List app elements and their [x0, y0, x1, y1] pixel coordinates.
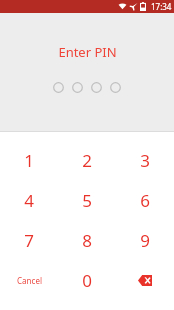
staticText: 1	[24, 149, 34, 172]
staticText: 8	[82, 229, 92, 252]
button[interactable]: 9	[116, 220, 174, 260]
button[interactable]: 0	[58, 260, 116, 300]
staticText: 9	[140, 229, 150, 252]
staticText: Enter PIN	[58, 43, 117, 61]
staticText: Cancel	[17, 275, 42, 286]
button[interactable]: 4	[0, 180, 58, 220]
button[interactable]: Cancel	[0, 260, 58, 300]
staticText: 3	[140, 149, 150, 172]
staticText: 17:34	[151, 1, 172, 12]
button[interactable]: 7	[0, 220, 58, 260]
button[interactable]: 8	[58, 220, 116, 260]
staticText: 7	[24, 229, 34, 252]
button[interactable]: 6	[116, 180, 174, 220]
button[interactable]: 3	[116, 140, 174, 180]
staticText: 6	[140, 189, 150, 212]
staticText: 0	[82, 269, 92, 292]
button[interactable]: 2	[58, 140, 116, 180]
staticText: 4	[24, 189, 34, 212]
button[interactable]: 1	[0, 140, 58, 180]
staticText: 5	[82, 189, 92, 212]
staticText: 2	[82, 149, 92, 172]
button[interactable]: Backspace	[116, 260, 174, 300]
button[interactable]: 5	[58, 180, 116, 220]
